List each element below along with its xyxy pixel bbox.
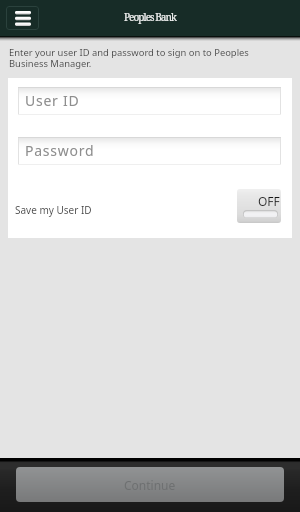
button[interactable]: Password bbox=[18, 137, 281, 165]
button[interactable]: Continue bbox=[16, 467, 284, 502]
staticText: Enter your user ID and password to sign … bbox=[9, 46, 267, 70]
button[interactable]: Menu bbox=[6, 6, 39, 30]
staticText: User ID bbox=[25, 91, 80, 110]
staticText: Peoples Bank bbox=[124, 10, 176, 24]
staticText: Continue bbox=[124, 477, 176, 493]
staticText: Save my User ID bbox=[15, 203, 92, 217]
staticText: OFF bbox=[258, 193, 280, 209]
button[interactable]: User ID bbox=[18, 87, 281, 115]
staticText: Password bbox=[25, 141, 95, 160]
button[interactable]: Save my User ID toggle, off bbox=[237, 189, 281, 223]
